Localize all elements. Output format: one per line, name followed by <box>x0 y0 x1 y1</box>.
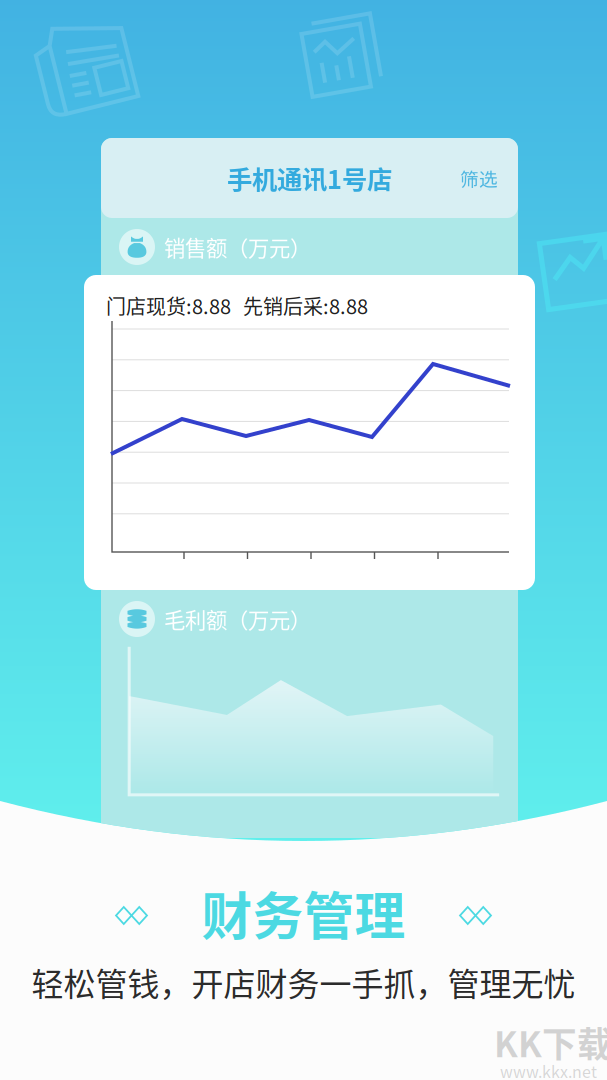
staticText: 销售额（万元） <box>164 232 311 262</box>
staticText: 毛利额（万元） <box>164 604 311 634</box>
staticText: 财务管理 <box>201 876 405 950</box>
staticText: KK下载 <box>494 1017 607 1067</box>
staticText: 筛选 <box>460 164 498 191</box>
staticText: 门店现货:8.88 先销后采:8.88 <box>106 291 368 320</box>
button[interactable]: 筛选 <box>440 138 518 218</box>
staticText: 轻松管钱，开店财务一手抓，管理无忧 <box>31 959 575 1005</box>
staticText: 手机通讯1号店 <box>227 160 392 196</box>
staticText: www.kkx.net <box>500 1059 597 1080</box>
